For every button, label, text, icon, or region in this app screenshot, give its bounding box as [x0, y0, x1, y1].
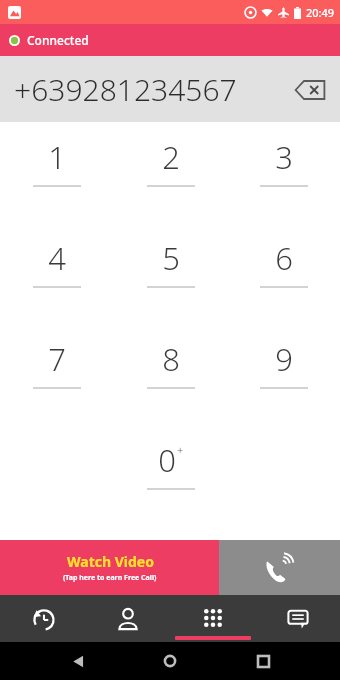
staticText: Connected — [27, 32, 89, 48]
staticText: 5 — [162, 237, 180, 279]
staticText: 6 — [275, 237, 293, 279]
staticText: Watch Video — [67, 552, 154, 571]
button[interactable]: Messages — [255, 595, 340, 642]
button[interactable]: History — [0, 595, 85, 642]
button[interactable]: 6 — [227, 237, 340, 338]
button[interactable]: 5 — [114, 237, 227, 338]
staticText: + — [177, 442, 184, 457]
button[interactable]: 8 — [114, 338, 227, 439]
button[interactable]: 9 — [227, 338, 340, 439]
button[interactable]: Backspace — [290, 70, 330, 110]
staticText: 0 — [158, 439, 176, 481]
button[interactable]: 0 — [114, 439, 227, 540]
staticText: 2 — [162, 136, 180, 178]
button[interactable]: Dialpad — [170, 595, 255, 642]
staticText: 1 — [48, 136, 66, 178]
button[interactable]: Call — [219, 540, 340, 595]
button[interactable]: Watch Video — [0, 540, 219, 595]
staticText: +639281234567 — [14, 69, 290, 110]
button[interactable]: Home — [155, 646, 185, 676]
staticText: 3 — [275, 136, 293, 178]
button[interactable]: 7 — [0, 338, 114, 439]
button[interactable]: 1 — [0, 136, 114, 237]
staticText: 9 — [275, 338, 293, 380]
staticText: 20:49 — [306, 5, 335, 20]
staticText: 4 — [48, 237, 66, 279]
staticText: (Tap here to earn Free Call) — [63, 573, 157, 583]
button[interactable]: Contacts — [85, 595, 170, 642]
button[interactable]: Back — [63, 646, 93, 676]
staticText: 8 — [162, 338, 180, 380]
button[interactable]: 2 — [114, 136, 227, 237]
staticText: 7 — [48, 338, 66, 380]
button[interactable]: 4 — [0, 237, 114, 338]
button[interactable]: Recents — [248, 646, 278, 676]
button[interactable]: Connected — [0, 24, 340, 56]
button[interactable]: 3 — [227, 136, 340, 237]
button[interactable]: +639281234567 — [0, 56, 340, 122]
